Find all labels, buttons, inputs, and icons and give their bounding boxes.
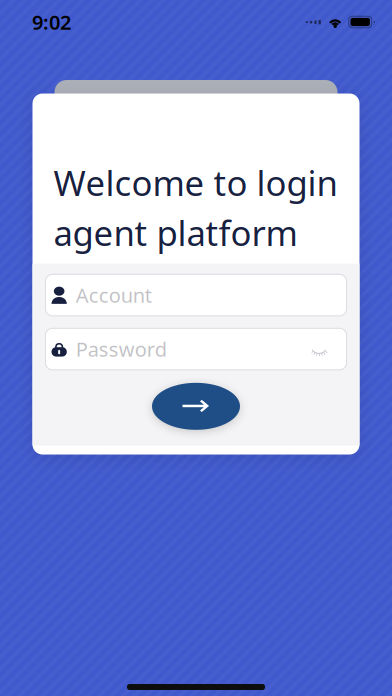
staticText: Password	[76, 336, 167, 362]
staticText: 9:02	[32, 9, 71, 35]
button[interactable]: Sign in	[141, 379, 251, 434]
staticText: Welcome to login	[53, 159, 337, 205]
staticText: Account	[76, 282, 152, 308]
staticText: agent platform	[53, 209, 297, 255]
button[interactable]: Account	[45, 274, 346, 316]
button[interactable]: Password	[45, 328, 346, 370]
